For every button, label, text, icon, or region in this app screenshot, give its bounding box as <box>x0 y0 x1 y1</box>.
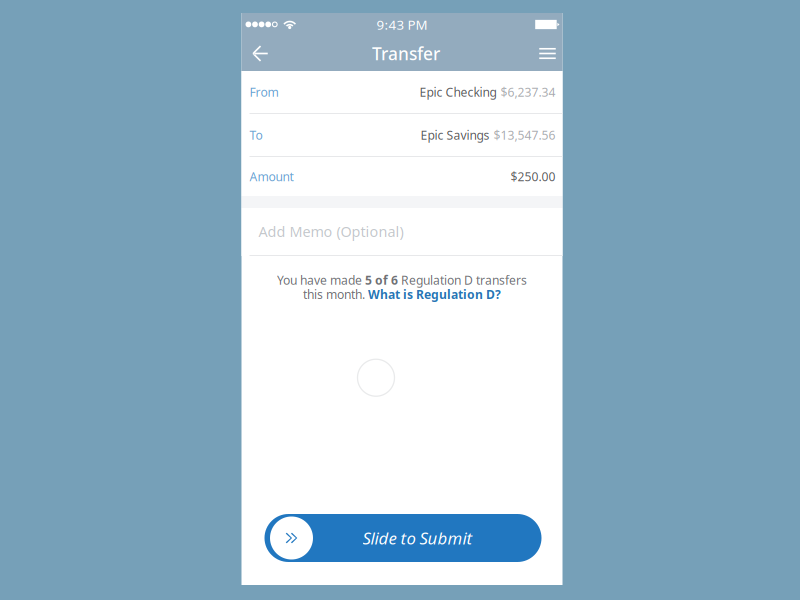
staticText: Slide to Submit <box>362 527 472 549</box>
staticText: What is Regulation D? <box>368 286 501 302</box>
staticText: Transfer <box>372 42 440 65</box>
staticText: Regulation D transfers <box>398 272 527 288</box>
button[interactable]: Add Memo (Optional) <box>241 208 562 255</box>
button[interactable]: Menu <box>529 36 565 71</box>
staticText: $13,547.56 <box>493 127 555 143</box>
button[interactable]: From <box>241 71 562 113</box>
staticText: 5 of 6 <box>365 272 398 288</box>
staticText: Epic Savings <box>420 127 489 143</box>
button[interactable]: Slide to Submit <box>264 514 541 562</box>
button[interactable]: Back <box>242 36 278 71</box>
staticText: $250.00 <box>510 168 555 184</box>
staticText: Amount <box>249 168 293 184</box>
staticText: From <box>249 84 278 100</box>
staticText: To <box>249 127 262 143</box>
staticText: You have made <box>277 272 365 288</box>
staticText: Epic Checking <box>419 84 496 100</box>
staticText: this month. <box>303 286 368 302</box>
staticText: 9:43 PM <box>376 16 427 33</box>
button[interactable]: Amount <box>241 157 562 196</box>
button[interactable]: To <box>241 114 562 156</box>
staticText: $6,237.34 <box>500 84 555 100</box>
staticText: Add Memo (Optional) <box>258 222 403 241</box>
button[interactable]: What is Regulation D? <box>368 286 501 302</box>
